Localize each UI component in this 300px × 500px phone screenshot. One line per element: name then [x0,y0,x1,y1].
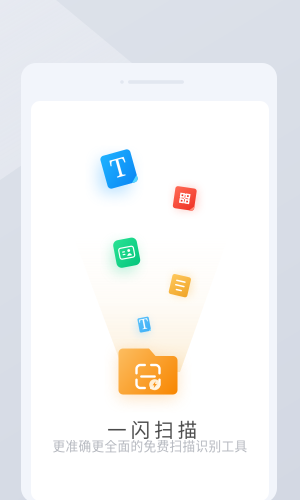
staticText: 一闪扫描 [107,415,197,443]
staticText: 更准确更全面的免费扫描识别工具 [52,436,247,454]
staticText: T [111,152,127,186]
staticText: T [140,315,149,334]
